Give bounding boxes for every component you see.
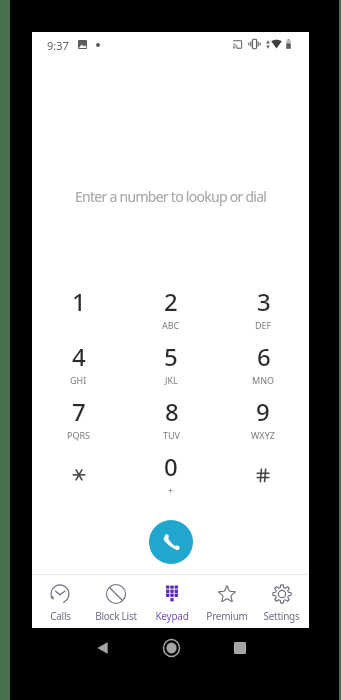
- staticText: Calls: [50, 609, 71, 623]
- button[interactable]: Home: [156, 633, 186, 663]
- staticText: PQRS: [67, 429, 91, 441]
- staticText: 9: [256, 395, 270, 428]
- staticText: 9:37: [47, 38, 69, 53]
- staticText: 3: [257, 285, 271, 318]
- button[interactable]: Keypad: [144, 575, 199, 628]
- staticText: 6: [257, 340, 271, 373]
- button[interactable]: Call: [149, 520, 193, 564]
- button[interactable]: 0: [125, 450, 217, 505]
- button[interactable]: Back: [87, 633, 117, 663]
- staticText: MNO: [252, 374, 275, 386]
- button[interactable]: Premium: [199, 575, 254, 628]
- staticText: ABC: [162, 319, 180, 331]
- staticText: WXYZ: [251, 429, 275, 441]
- button[interactable]: 2: [125, 285, 217, 340]
- staticText: 1: [72, 285, 86, 318]
- staticText: DEF: [255, 319, 272, 331]
- staticText: Block List: [95, 609, 137, 623]
- button[interactable]: 7: [32, 395, 125, 450]
- button[interactable]: Calls: [32, 575, 88, 628]
- staticText: 8: [165, 395, 179, 428]
- staticText: +: [168, 484, 174, 496]
- button[interactable]: Recents: [225, 633, 255, 663]
- staticText: 0: [164, 450, 178, 483]
- staticText: GHI: [70, 374, 87, 386]
- button[interactable]: 8: [125, 395, 217, 450]
- button[interactable]: Block List: [88, 575, 144, 628]
- button[interactable]: 5: [125, 340, 217, 395]
- button[interactable]: 9: [217, 395, 309, 450]
- button[interactable]: [217, 450, 309, 505]
- staticText: JKL: [165, 374, 178, 386]
- button[interactable]: Settings: [254, 575, 309, 628]
- staticText: 7: [72, 395, 86, 428]
- button[interactable]: 4: [32, 340, 125, 395]
- button[interactable]: 1: [32, 285, 125, 340]
- staticText: Premium: [206, 609, 248, 623]
- staticText: TUV: [163, 429, 180, 441]
- staticText: 4: [72, 340, 86, 373]
- button[interactable]: [32, 450, 125, 505]
- staticText: 5: [164, 340, 178, 373]
- button[interactable]: 3: [217, 285, 309, 340]
- staticText: Enter a number to lookup or dial: [75, 187, 267, 206]
- button[interactable]: 6: [217, 340, 309, 395]
- staticText: Settings: [263, 609, 300, 623]
- staticText: 2: [164, 285, 178, 318]
- staticText: Keypad: [155, 609, 189, 623]
